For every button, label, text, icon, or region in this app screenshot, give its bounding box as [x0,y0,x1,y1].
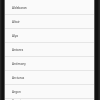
button[interactable]: Alya [5,29,94,42]
staticText: Aldebaran [12,6,27,10]
staticText: Alya [12,34,19,38]
button[interactable]: Arcturus [5,71,94,84]
button[interactable]: Aldebaran [5,1,94,14]
button[interactable]: Argon [5,85,94,98]
button[interactable]: Antares [5,43,94,56]
staticText: Arcturus [12,76,25,80]
staticText: Argon [12,90,21,94]
button[interactable]: Altair [5,15,94,28]
staticText: Antimony [12,62,26,66]
staticText: Antares [12,48,24,52]
staticText: Altair [12,20,20,24]
button[interactable]: Arsenic [5,99,94,100]
staticText: Arsenic [12,99,23,100]
button[interactable]: Antimony [5,57,94,70]
